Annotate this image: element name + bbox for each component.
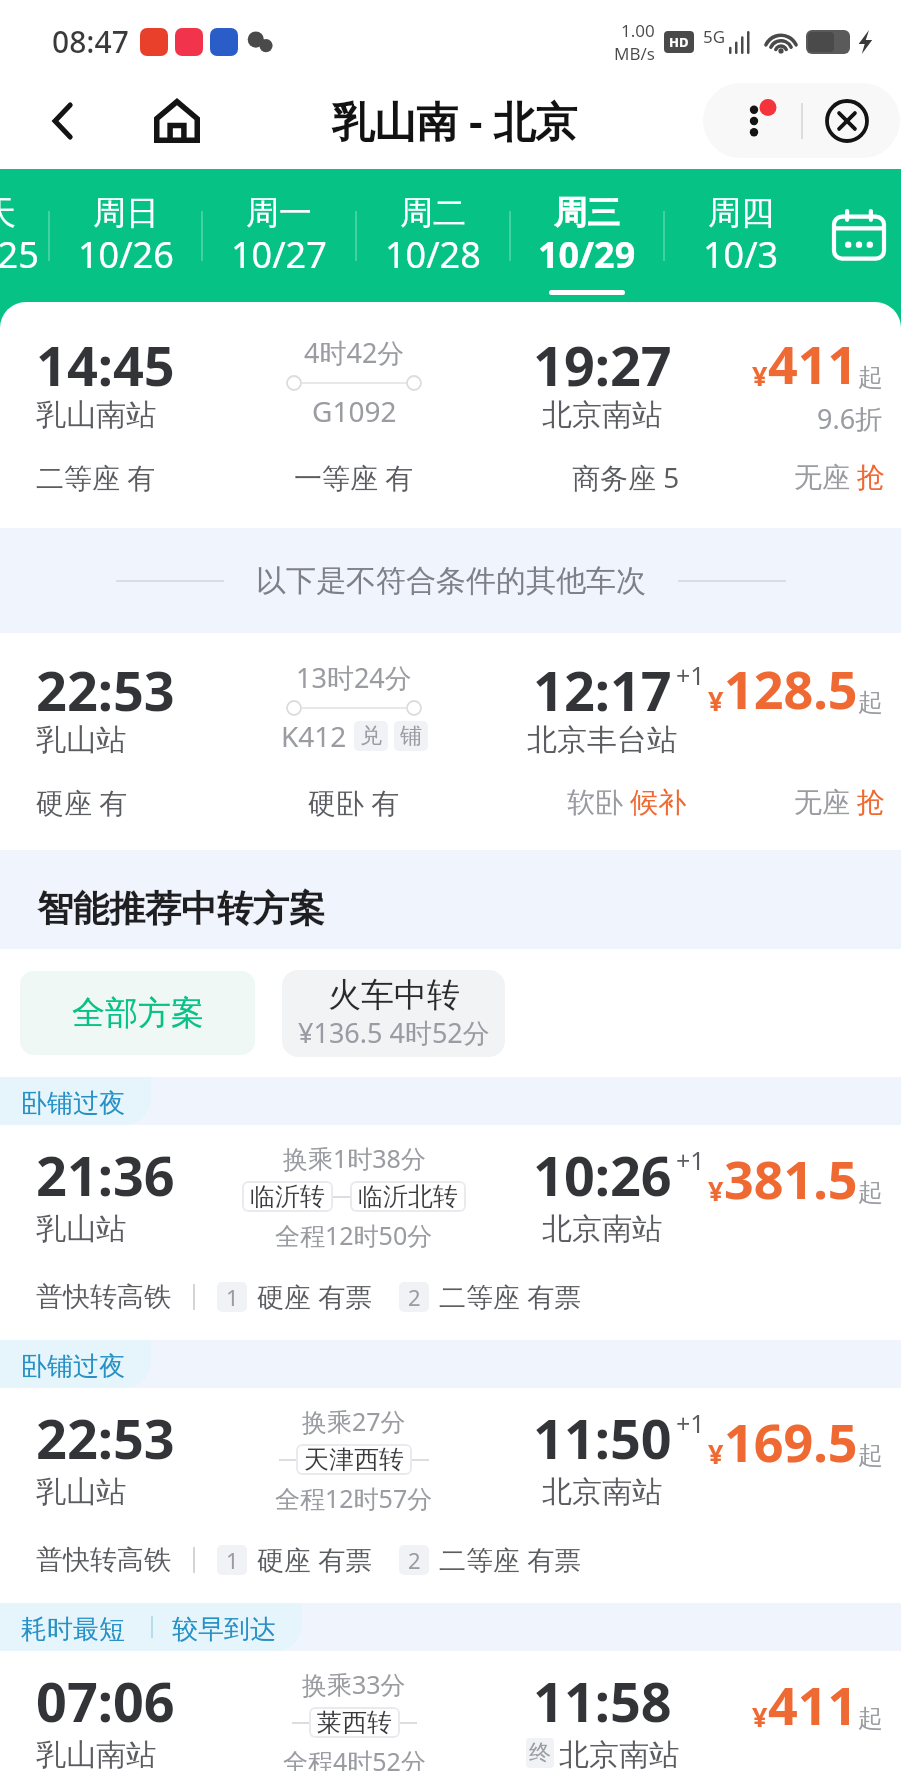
staticText: 抢 [857, 460, 883, 495]
button[interactable]: 周四 [665, 169, 817, 302]
staticText: 全程12时57分 [275, 1481, 433, 1515]
button[interactable]: 卧铺过夜 [0, 1340, 901, 1603]
staticText: 乳山南 - 北京 [332, 92, 578, 149]
button[interactable]: 周二 [357, 169, 509, 302]
staticText: 周二 [400, 192, 466, 234]
staticText: 卧铺过夜 [21, 1087, 125, 1120]
staticText: 乳山站 [36, 1473, 126, 1511]
staticText: 莱西转 [317, 1707, 392, 1738]
staticText: 北京南站 [542, 396, 662, 434]
staticText: 周四 [708, 192, 774, 234]
staticText: 10/28 [385, 230, 481, 279]
staticText: 硬座 有票 [257, 1541, 373, 1578]
staticText: 乳山站 [36, 721, 126, 759]
staticText: 以下是不符合条件的其他车次 [256, 562, 646, 600]
staticText: 北京南站 [559, 1736, 679, 1769]
staticText: 卧铺过夜 [21, 1350, 125, 1383]
staticText: 铺 [400, 722, 422, 750]
staticText: 5G [703, 25, 726, 48]
staticText: 乳山南站 [36, 1736, 156, 1769]
staticText: +1 [676, 1143, 705, 1177]
staticText: 10/29 [538, 230, 636, 279]
button[interactable]: 周三 [511, 169, 663, 302]
staticText: 商务座 5 [572, 458, 680, 496]
staticText: 1.00 [621, 19, 655, 42]
button[interactable]: Home [146, 90, 208, 152]
staticText: ¥ [752, 1698, 768, 1735]
staticText: 耗时最短 [21, 1613, 125, 1646]
staticText: 智能推荐中转方案 [37, 886, 325, 931]
staticText: 起 [858, 362, 883, 393]
button[interactable]: Back [32, 90, 94, 152]
button[interactable]: 周一 [203, 169, 355, 302]
staticText: 07:06 [36, 1664, 175, 1738]
staticText: 硬卧 有 [308, 783, 400, 821]
staticText: 二等座 有票 [439, 1278, 582, 1315]
staticText: 9.6折 [817, 400, 883, 437]
staticText: 10/3 [703, 230, 779, 279]
staticText: 起 [858, 1703, 883, 1734]
button[interactable]: 全部方案 [20, 971, 255, 1055]
staticText: 起 [858, 1440, 883, 1471]
button[interactable]: 周天 [0, 169, 48, 302]
staticText: 10:26 [533, 1138, 672, 1212]
button[interactable]: Close [803, 83, 891, 158]
button[interactable]: Calendar [817, 169, 901, 302]
staticText: 411 [768, 1669, 858, 1740]
staticText: 二等座 有 [36, 458, 156, 496]
staticText: 周三 [554, 192, 620, 234]
staticText: 13时24分 [296, 659, 412, 696]
staticText: 起 [858, 687, 883, 718]
staticText: 1 [226, 1282, 239, 1312]
staticText: 火车中转 [328, 974, 460, 1016]
staticText: 一等座 有 [294, 458, 414, 496]
staticText: 381.5 [724, 1143, 858, 1214]
staticText: 临沂转 [250, 1181, 325, 1212]
staticText: 2 [408, 1282, 421, 1312]
button[interactable]: 周日 [50, 169, 201, 302]
button[interactable]: 卧铺过夜 [0, 1077, 901, 1340]
button[interactable]: 14:45 [0, 302, 901, 528]
staticText: 全部方案 [72, 992, 204, 1034]
staticText: 11:58 [533, 1664, 672, 1738]
staticText: ¥ [708, 1435, 724, 1472]
staticText: 候补 [630, 785, 686, 820]
button[interactable]: 耗时最短 [0, 1603, 901, 1771]
staticText: 北京南站 [542, 1210, 662, 1248]
staticText: 乳山站 [36, 1210, 126, 1248]
staticText: 无座 [794, 785, 850, 820]
staticText: 14:45 [36, 328, 175, 402]
staticText: 硬座 有 [36, 783, 128, 821]
staticText: 换乘33分 [302, 1667, 406, 1701]
staticText: 11:50 [533, 1401, 672, 1475]
staticText: 411 [768, 328, 858, 399]
staticText: 08:47 [52, 21, 129, 62]
staticText: 4时42分 [304, 334, 405, 371]
staticText: 周一 [246, 192, 312, 234]
staticText: 1 [226, 1545, 239, 1575]
staticText: HD [669, 33, 689, 51]
staticText: +1 [676, 658, 705, 692]
staticText: 周天 [0, 192, 16, 234]
staticText: 二等座 有票 [439, 1541, 582, 1578]
button[interactable]: More [713, 83, 801, 158]
staticText: 普快转高铁 [36, 1543, 171, 1577]
staticText: 终 [529, 1739, 551, 1767]
button[interactable]: 22:53 [0, 633, 901, 850]
staticText: 硬座 有票 [257, 1278, 373, 1315]
staticText: 北京丰台站 [527, 721, 677, 759]
staticText: 12:17 [533, 653, 672, 727]
staticText: 兑 [360, 722, 382, 750]
staticText: 169.5 [724, 1406, 858, 1477]
staticText: ¥136.5 4时52分 [298, 1014, 490, 1051]
staticText: 软卧 [567, 785, 623, 820]
staticText: 天津西转 [304, 1444, 404, 1475]
staticText: 21:36 [36, 1138, 175, 1212]
staticText: 临沂北转 [358, 1181, 458, 1212]
staticText: 无座 [794, 460, 850, 495]
staticText: 2 [408, 1545, 421, 1575]
staticText: 普快转高铁 [36, 1280, 171, 1314]
staticText: 较早到达 [172, 1613, 276, 1646]
staticText: ¥ [708, 1172, 724, 1209]
button[interactable]: 火车中转 [282, 970, 505, 1057]
